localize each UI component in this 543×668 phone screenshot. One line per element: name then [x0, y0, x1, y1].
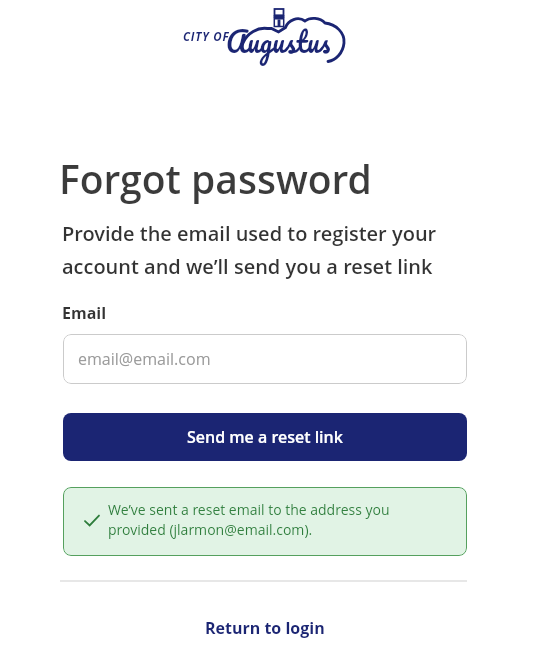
staticText: email@email.com: [78, 348, 211, 370]
staticText: Email: [62, 302, 107, 324]
staticText: Send me a reset link: [187, 426, 343, 448]
button[interactable]: Return to login: [63, 610, 467, 646]
staticText: We’ve sent a reset email to the address …: [108, 500, 390, 539]
staticText: Augustus: [226, 18, 331, 65]
staticText: Return to login: [205, 617, 325, 639]
staticText: Forgot password: [59, 152, 372, 205]
button[interactable]: Send me a reset link: [63, 413, 467, 461]
staticText: Provide the email used to register your …: [62, 220, 437, 280]
staticText: CITY OF: [183, 29, 230, 45]
button[interactable]: email@email.com: [63, 334, 467, 384]
